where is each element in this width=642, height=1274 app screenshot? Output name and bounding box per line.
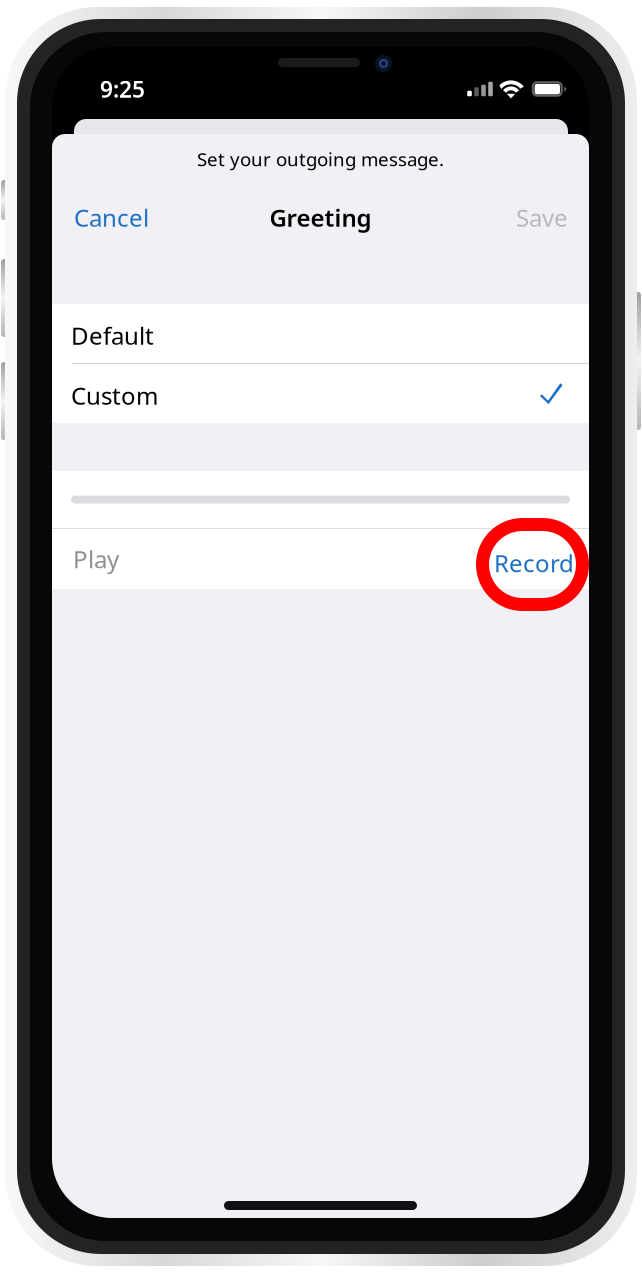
staticText: Greeting: [269, 202, 371, 233]
button[interactable]: Custom: [52, 364, 589, 423]
staticText: Set your outgoing message.: [197, 147, 444, 171]
button[interactable]: Cancel: [52, 187, 171, 248]
staticText: Save: [516, 202, 568, 233]
button[interactable]: Record: [494, 529, 589, 589]
button[interactable]: Save: [495, 187, 589, 248]
staticText: Cancel: [74, 202, 149, 233]
staticText: Custom: [71, 380, 158, 411]
staticText: Default: [71, 320, 154, 351]
button[interactable]: Default: [52, 304, 589, 363]
staticText: Play: [73, 543, 119, 575]
button[interactable]: Play: [52, 529, 119, 589]
staticText: 9:25: [100, 74, 145, 104]
staticText: Record: [494, 547, 574, 579]
